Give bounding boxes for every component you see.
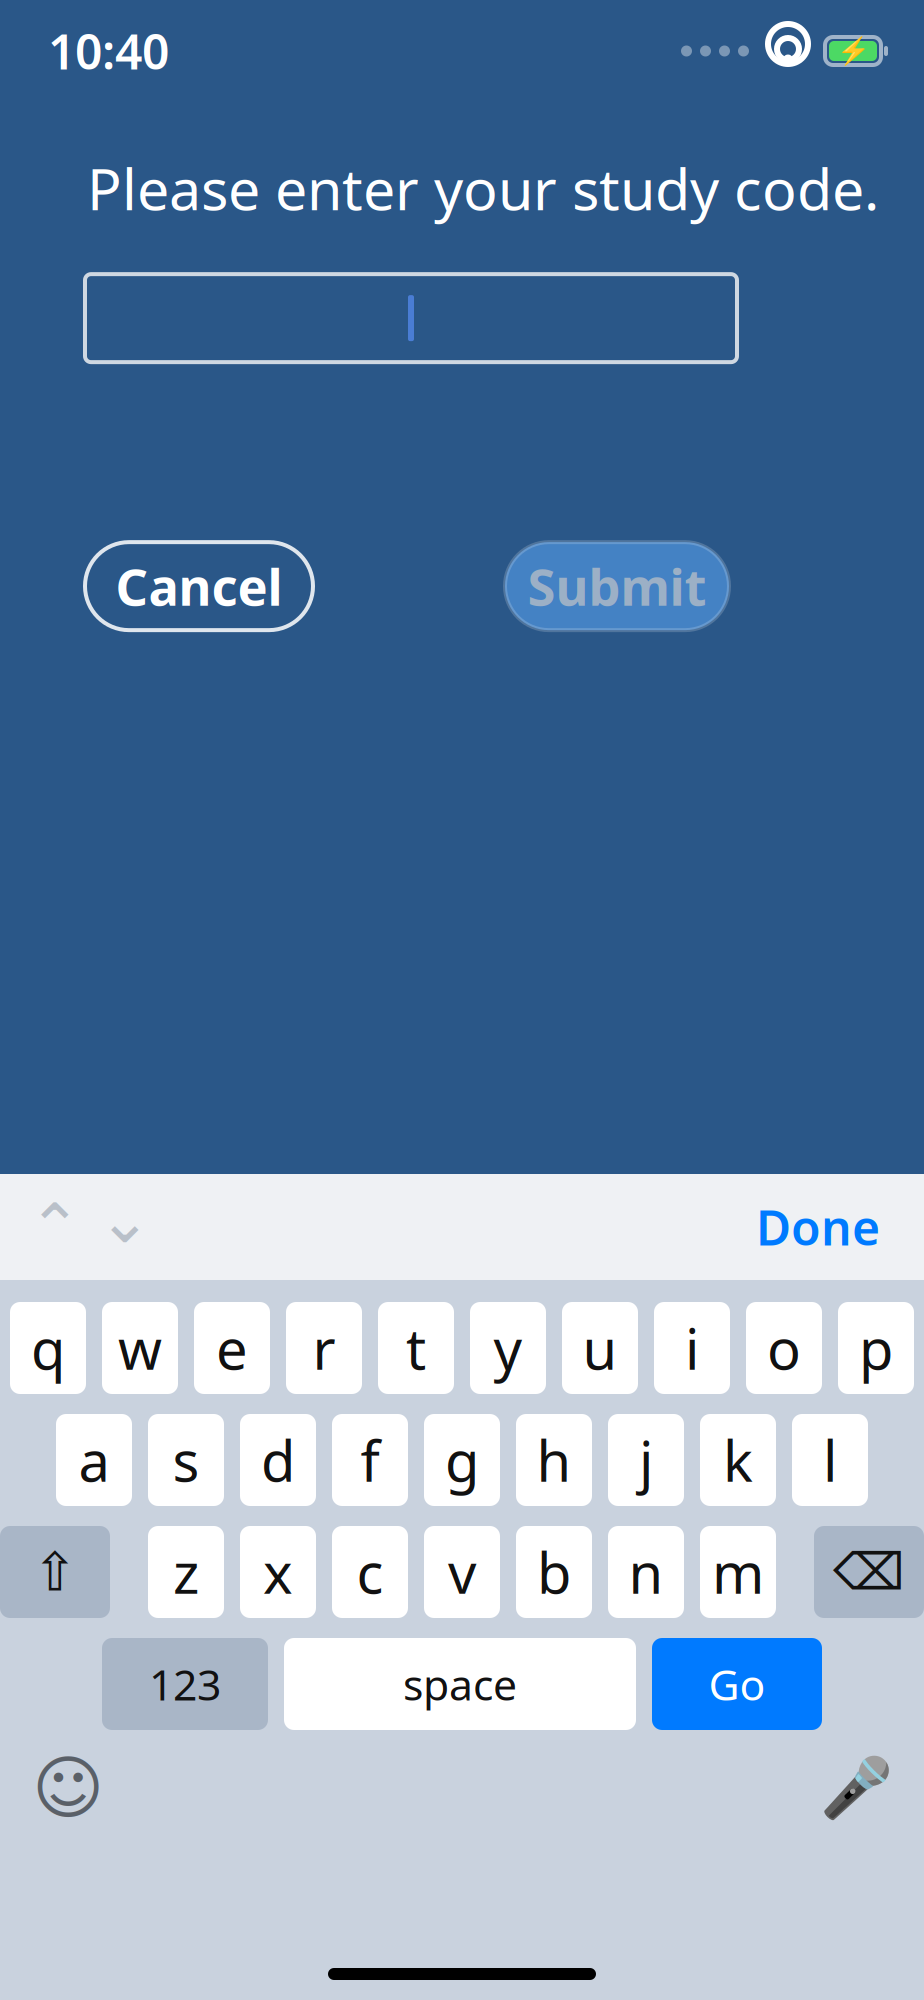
button[interactable]: x bbox=[240, 1526, 316, 1618]
button[interactable]: z bbox=[148, 1526, 224, 1618]
staticText: v bbox=[448, 1535, 476, 1609]
button[interactable]: space bbox=[284, 1638, 636, 1730]
staticText: y bbox=[493, 1311, 522, 1385]
button[interactable]: d bbox=[240, 1414, 316, 1506]
button[interactable]: m bbox=[700, 1526, 776, 1618]
staticText: Done bbox=[756, 1195, 880, 1259]
button[interactable]: g bbox=[424, 1414, 500, 1506]
staticText: o bbox=[767, 1311, 801, 1385]
button[interactable]: s bbox=[148, 1414, 224, 1506]
button[interactable]: v bbox=[424, 1526, 500, 1618]
button[interactable]: a bbox=[56, 1414, 132, 1506]
button[interactable]: t bbox=[378, 1302, 454, 1394]
staticText: 123 bbox=[149, 1656, 221, 1712]
staticText: c bbox=[356, 1535, 383, 1609]
staticText: g bbox=[445, 1423, 479, 1497]
staticText: r bbox=[312, 1311, 335, 1385]
button[interactable]: e bbox=[194, 1302, 270, 1394]
staticText: s bbox=[172, 1423, 199, 1497]
button[interactable]: r bbox=[286, 1302, 362, 1394]
staticText: n bbox=[628, 1535, 663, 1609]
staticText: ⌫ bbox=[833, 1543, 905, 1601]
button[interactable]: Shift bbox=[0, 1526, 110, 1618]
staticText: j bbox=[639, 1423, 653, 1497]
button[interactable]: p bbox=[838, 1302, 914, 1394]
button[interactable]: Next field bbox=[90, 1182, 160, 1272]
staticText: Submit bbox=[527, 552, 706, 620]
button[interactable]: Previous field bbox=[20, 1189, 90, 1265]
button[interactable]: b bbox=[516, 1526, 592, 1618]
staticText: 10:40 bbox=[48, 19, 169, 83]
staticText: p bbox=[859, 1311, 893, 1385]
staticText: m bbox=[712, 1535, 764, 1609]
button[interactable]: o bbox=[746, 1302, 822, 1394]
staticText: ⌄ bbox=[98, 1184, 152, 1256]
button[interactable]: i bbox=[654, 1302, 730, 1394]
staticText: a bbox=[78, 1423, 109, 1497]
staticText: k bbox=[723, 1423, 753, 1497]
button[interactable]: Go bbox=[652, 1638, 822, 1730]
staticText: w bbox=[118, 1311, 162, 1385]
staticText: Cancel bbox=[115, 552, 282, 620]
staticText: f bbox=[360, 1423, 379, 1497]
staticText: l bbox=[823, 1423, 837, 1497]
staticText: e bbox=[216, 1311, 248, 1385]
button[interactable]: q bbox=[10, 1302, 86, 1394]
staticText: t bbox=[406, 1311, 426, 1385]
staticText: b bbox=[537, 1535, 571, 1609]
button[interactable]: Delete bbox=[814, 1526, 924, 1618]
button[interactable]: n bbox=[608, 1526, 684, 1618]
staticText: x bbox=[263, 1535, 293, 1609]
button[interactable]: w bbox=[102, 1302, 178, 1394]
staticText: d bbox=[261, 1423, 295, 1497]
button[interactable]: c bbox=[332, 1526, 408, 1618]
staticText: 🎤 bbox=[819, 1754, 892, 1821]
button[interactable]: y bbox=[470, 1302, 546, 1394]
button[interactable]: Submit bbox=[505, 542, 729, 630]
button[interactable]: Cancel bbox=[85, 542, 313, 630]
staticText: z bbox=[173, 1535, 199, 1609]
button[interactable]: Done bbox=[740, 1189, 896, 1265]
staticText: h bbox=[536, 1423, 571, 1497]
staticText: Go bbox=[708, 1656, 765, 1712]
staticText: ⚡ bbox=[836, 36, 869, 66]
staticText: q bbox=[31, 1311, 65, 1385]
button[interactable]: 123 bbox=[102, 1638, 268, 1730]
staticText: Please enter your study code. bbox=[87, 150, 879, 226]
staticText: space bbox=[403, 1656, 517, 1712]
button[interactable]: u bbox=[562, 1302, 638, 1394]
staticText: ☺ bbox=[32, 1749, 104, 1827]
button[interactable]: j bbox=[608, 1414, 684, 1506]
button[interactable]: k bbox=[700, 1414, 776, 1506]
button[interactable]: h bbox=[516, 1414, 592, 1506]
button[interactable]: Emoji bbox=[28, 1748, 108, 1828]
button[interactable]: f bbox=[332, 1414, 408, 1506]
staticText: ⌃ bbox=[28, 1191, 82, 1263]
staticText: u bbox=[582, 1311, 617, 1385]
button[interactable]: Study code text field bbox=[85, 274, 737, 362]
button[interactable]: Dictation bbox=[816, 1748, 896, 1828]
staticText: i bbox=[685, 1311, 699, 1385]
button[interactable]: l bbox=[792, 1414, 868, 1506]
staticText: ⇧ bbox=[32, 1542, 77, 1602]
